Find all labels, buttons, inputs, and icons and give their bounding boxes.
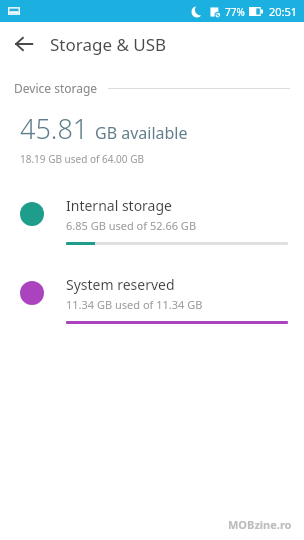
staticText: MOBzine.ro [228, 517, 292, 532]
button[interactable]: System reserved [0, 263, 304, 334]
button[interactable]: Back [8, 28, 40, 60]
staticText: Device storage [14, 80, 98, 96]
staticText: 77% [225, 5, 245, 19]
staticText: System reserved [66, 275, 175, 294]
staticText: 6.85 GB used of 52.66 GB [66, 218, 197, 233]
staticText: Storage & USB [50, 33, 167, 56]
staticText: Internal storage [66, 196, 172, 215]
staticText: 18.19 GB used of 64.00 GB [20, 152, 144, 166]
staticText: 11.34 GB used of 11.34 GB [66, 297, 203, 312]
staticText: GB available [95, 122, 188, 144]
staticText: 20:51 [269, 4, 298, 19]
button[interactable]: Internal storage [0, 184, 304, 255]
staticText: 45.81 [20, 110, 89, 147]
